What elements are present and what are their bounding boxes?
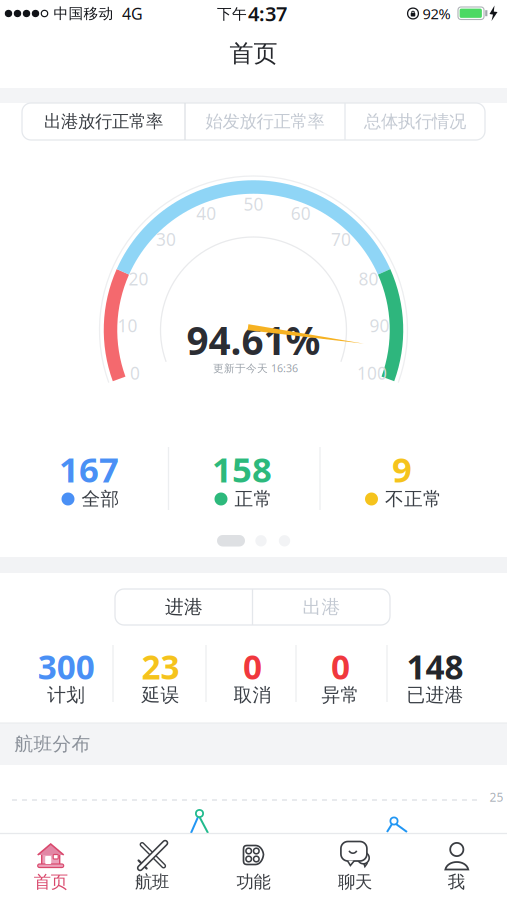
staticText: 4G <box>122 3 143 24</box>
staticText: 航班分布 <box>15 732 91 755</box>
staticText: 30 <box>156 228 176 251</box>
staticText: 延误 <box>141 683 179 706</box>
staticText: 158 <box>212 446 272 492</box>
button[interactable]: 出港放行正常率 <box>23 103 183 140</box>
staticText: 50 <box>243 192 263 215</box>
staticText: 首页 <box>34 871 68 893</box>
button[interactable]: 进港 <box>115 589 252 625</box>
staticText: 300 <box>38 644 95 689</box>
staticText: 0 <box>243 644 262 689</box>
staticText: 94.61% <box>186 314 320 366</box>
staticText: 出港放行正常率 <box>44 111 163 132</box>
staticText: 计划 <box>47 683 85 706</box>
staticText: 9 <box>392 446 412 492</box>
staticText: 我 <box>448 871 465 893</box>
staticText: 148 <box>406 644 463 689</box>
button[interactable]: 我 <box>416 834 496 898</box>
staticText: 更新于今天 16:36 <box>213 361 298 375</box>
staticText: 功能 <box>236 871 270 893</box>
button[interactable]: 总体执行情况 <box>346 103 483 140</box>
staticText: 0 <box>130 362 140 385</box>
staticText: 167 <box>59 446 119 492</box>
staticText: 始发放行正常率 <box>205 111 324 132</box>
staticText: 70 <box>331 228 351 251</box>
staticText: 全部 <box>81 487 119 510</box>
staticText: 中国移动 <box>53 4 113 22</box>
staticText: 0 <box>331 644 350 689</box>
button[interactable]: 出港 <box>253 589 390 625</box>
staticText: 出港 <box>302 595 340 618</box>
staticText: 92% <box>422 4 450 23</box>
staticText: 不正常 <box>385 487 442 510</box>
staticText: 60 <box>291 202 311 225</box>
staticText: 首页 <box>229 39 277 68</box>
button[interactable]: 航班 <box>112 834 192 898</box>
staticText: 下午 <box>217 5 247 23</box>
staticText: 取消 <box>233 683 271 706</box>
staticText: 100 <box>357 362 387 385</box>
staticText: 异常 <box>321 683 359 706</box>
staticText: 总体执行情况 <box>364 111 466 132</box>
staticText: 航班 <box>135 871 169 893</box>
staticText: 已进港 <box>406 683 463 706</box>
staticText: 10 <box>118 314 138 337</box>
staticText: 25 <box>489 789 503 805</box>
staticText: 40 <box>196 202 216 225</box>
staticText: 正常 <box>234 487 272 510</box>
staticText: 23 <box>141 644 179 689</box>
staticText: 4:37 <box>248 0 287 27</box>
button[interactable]: 功能 <box>213 834 293 898</box>
button[interactable]: 首页 <box>11 834 91 898</box>
staticText: 进港 <box>165 595 203 618</box>
staticText: 20 <box>128 267 148 290</box>
button[interactable]: 始发放行正常率 <box>186 103 343 140</box>
staticText: 90 <box>369 314 389 337</box>
staticText: 聊天 <box>338 871 372 893</box>
button[interactable]: 聊天 <box>315 834 395 898</box>
staticText: 80 <box>359 267 379 290</box>
